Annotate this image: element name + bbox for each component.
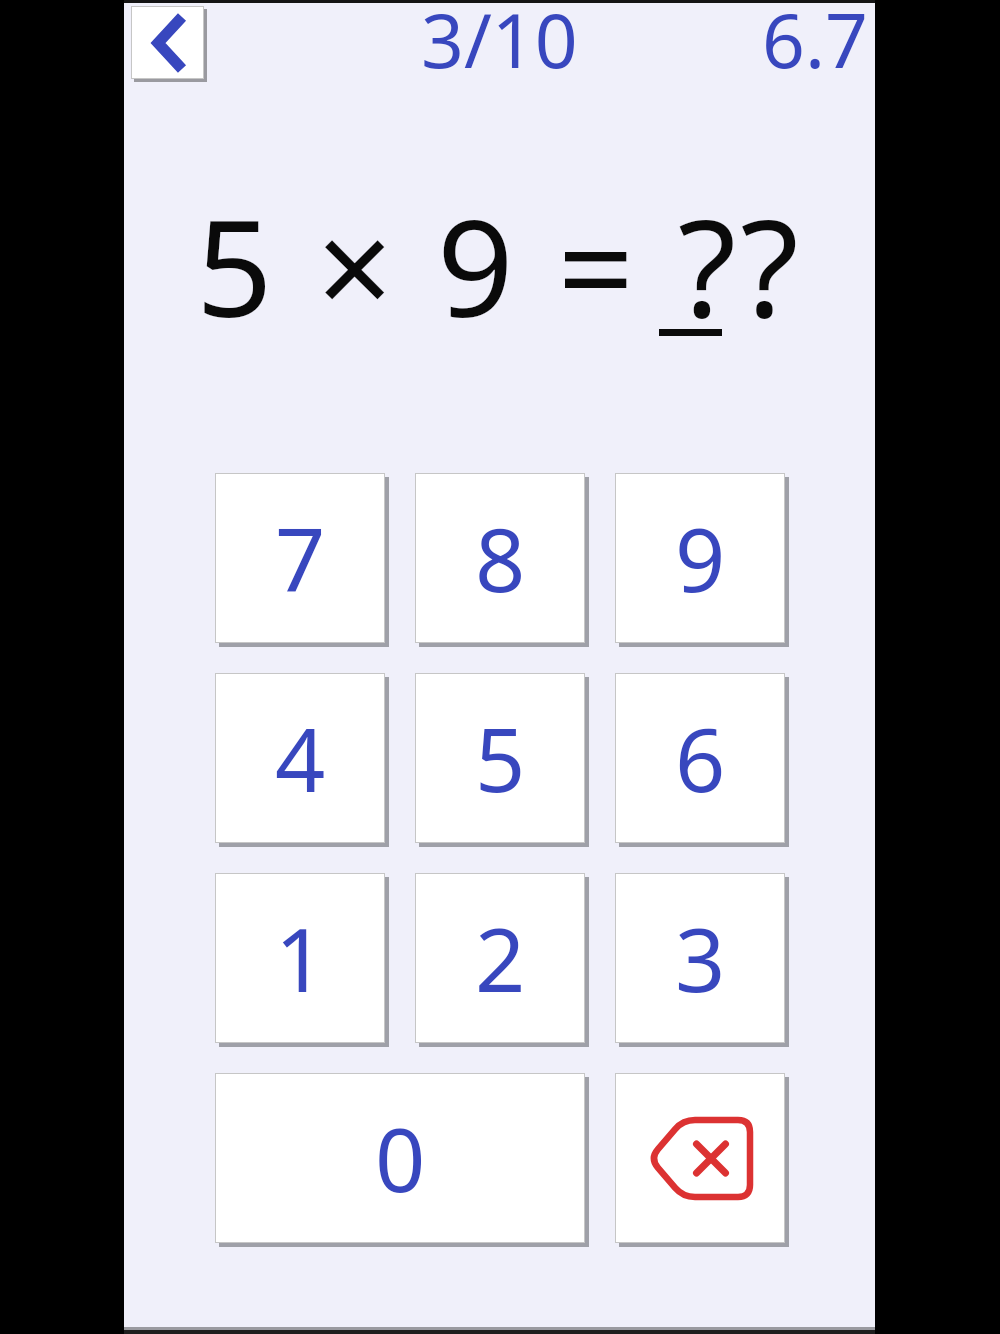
staticText: 5 xyxy=(475,698,526,818)
staticText: 1 xyxy=(275,898,326,1018)
button[interactable] xyxy=(131,6,204,79)
button[interactable]: 5 xyxy=(415,673,585,843)
button[interactable]: 4 xyxy=(215,673,385,843)
button[interactable]: 0 xyxy=(215,1073,585,1243)
staticText: 2 xyxy=(475,898,526,1018)
staticText: 0 xyxy=(375,1098,426,1218)
staticText: 8 xyxy=(475,498,526,618)
staticText: 6 xyxy=(675,698,726,818)
button[interactable]: 7 xyxy=(215,473,385,643)
staticText: 6.7 xyxy=(762,0,868,88)
staticText: 7 xyxy=(275,498,326,618)
button[interactable]: 1 xyxy=(215,873,385,1043)
staticText: 5 × 9 = ?? xyxy=(196,174,804,357)
button[interactable]: 9 xyxy=(615,473,785,643)
staticText: 9 xyxy=(675,498,726,618)
button[interactable]: 3 xyxy=(615,873,785,1043)
button[interactable]: 2 xyxy=(415,873,585,1043)
staticText: 3 xyxy=(675,898,726,1018)
staticText: 4 xyxy=(275,698,326,818)
button[interactable]: 8 xyxy=(415,473,585,643)
button[interactable]: 6 xyxy=(615,673,785,843)
staticText: 3/10 xyxy=(421,0,578,88)
button[interactable] xyxy=(615,1073,785,1243)
